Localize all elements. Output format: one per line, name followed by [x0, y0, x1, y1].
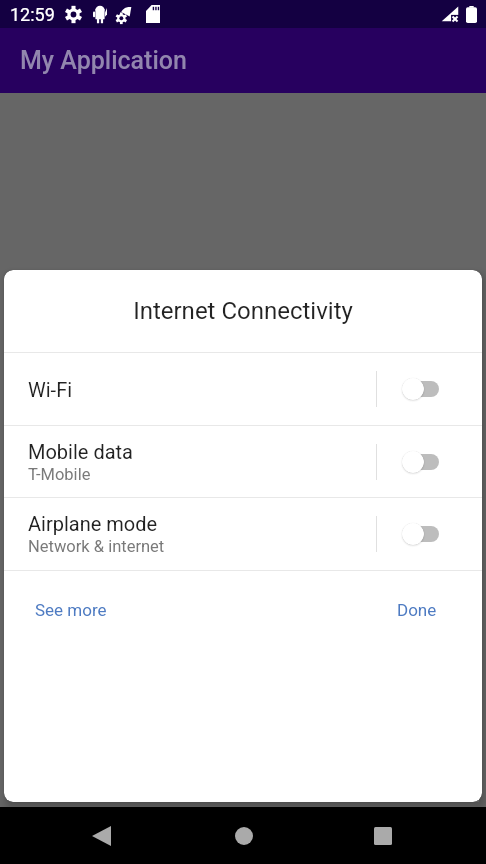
button[interactable]: Wi-Fi [4, 353, 482, 425]
button[interactable]: See more [19, 592, 123, 628]
staticText: Network & internet [28, 537, 165, 556]
staticText: Wi-Fi [28, 378, 73, 401]
staticText: 12:59 [10, 4, 55, 25]
staticText: My Application [20, 46, 187, 75]
button[interactable]: Toggle Airplane mode [377, 510, 482, 558]
button[interactable]: Back [78, 812, 125, 859]
button[interactable]: Recents [359, 812, 406, 859]
staticText: Internet Connectivity [133, 297, 353, 325]
staticText: Done [397, 600, 437, 620]
button[interactable]: Airplane mode [4, 498, 482, 570]
button[interactable]: Toggle Wi-Fi [377, 365, 482, 413]
button[interactable]: Home [220, 812, 267, 859]
staticText: T-Mobile [28, 465, 91, 484]
staticText: Airplane mode [28, 512, 158, 535]
staticText: Mobile data [28, 440, 133, 463]
button[interactable]: Done [381, 592, 453, 628]
button[interactable]: Toggle Mobile data [377, 438, 482, 486]
staticText: See more [35, 600, 107, 620]
button[interactable]: Mobile data [4, 426, 482, 497]
